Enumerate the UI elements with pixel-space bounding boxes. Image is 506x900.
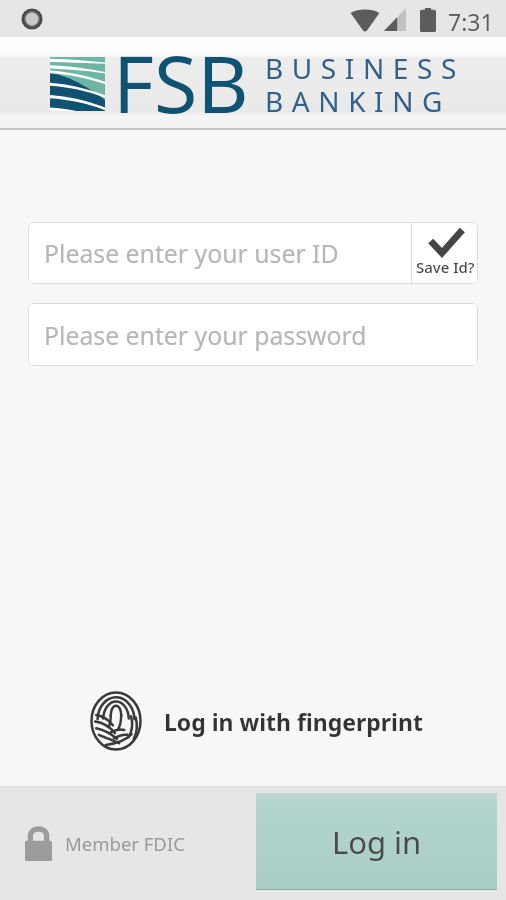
button[interactable]: Member FDIC [25, 826, 185, 861]
button[interactable]: Please enter your password [28, 303, 478, 366]
other: Fingerprint [90, 691, 142, 751]
staticText: Log in [332, 821, 422, 863]
staticText: BUSINESS [265, 49, 465, 87]
button[interactable]: Fingerprint [90, 686, 423, 756]
staticText: BANKING [265, 82, 452, 120]
staticText: FSB [113, 29, 249, 122]
button[interactable]: Please enter your user ID [28, 222, 411, 284]
staticText: Please enter your password [44, 318, 367, 352]
staticText: Log in with fingerprint [164, 706, 423, 737]
staticText: Member FDIC [65, 831, 185, 856]
staticText: Please enter your user ID [44, 236, 339, 270]
button[interactable]: Save Id? [412, 222, 478, 284]
button[interactable]: Log in [256, 793, 497, 890]
staticText: 7:31 [448, 6, 494, 37]
staticText: Save Id? [416, 257, 475, 277]
